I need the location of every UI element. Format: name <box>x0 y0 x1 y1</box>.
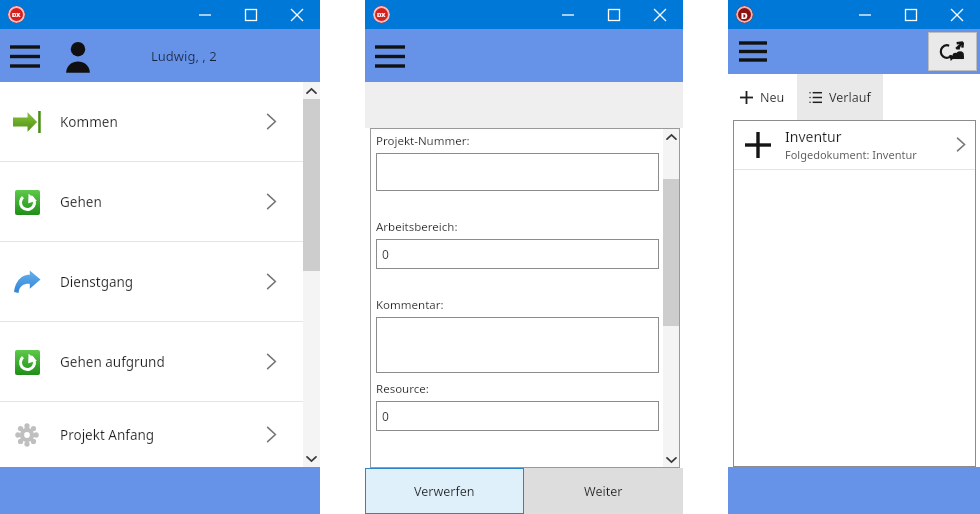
button[interactable]: Scroll down <box>303 450 320 467</box>
staticText: Projekt Anfang <box>60 426 155 444</box>
staticText: DX <box>377 11 386 19</box>
button[interactable]: Dienstgang <box>0 242 303 321</box>
button[interactable]: Gehen aufgrund <box>0 322 303 401</box>
button[interactable]: Scroll up <box>303 82 320 99</box>
staticText: Kommentar: <box>376 297 444 313</box>
button[interactable]: Scroll down <box>663 451 680 468</box>
staticText: Folgedokument: Inventur <box>785 147 917 162</box>
button[interactable]: Kommen <box>0 82 303 161</box>
staticText: Inventur <box>785 127 842 146</box>
button[interactable]: Sync <box>928 32 977 71</box>
button[interactable]: Maximize <box>228 0 274 29</box>
staticText: 0 <box>382 246 389 262</box>
button[interactable]: Menu <box>367 33 413 79</box>
staticText: Resource: <box>376 381 429 397</box>
staticText: Gehen aufgrund <box>60 353 165 371</box>
staticText: Verwerfen <box>414 483 475 500</box>
staticText: DX <box>12 11 21 19</box>
button[interactable]: Weiter <box>524 468 683 514</box>
staticText: Neu <box>760 89 785 106</box>
button[interactable]: Close <box>274 0 320 29</box>
staticText: 0 <box>382 408 389 424</box>
button[interactable]: Verwerfen <box>365 468 524 514</box>
staticText: D <box>741 9 748 21</box>
button[interactable]: 0 <box>376 239 659 269</box>
button[interactable]: Gehen <box>0 162 303 241</box>
staticText: Ludwig, , 2 <box>151 47 217 65</box>
button[interactable] <box>376 153 659 191</box>
button[interactable]: Neu <box>728 74 797 120</box>
staticText: Verlauf <box>829 89 871 106</box>
staticText: Weiter <box>584 483 623 500</box>
staticText: Projekt-Nummer: <box>376 133 470 149</box>
button[interactable]: Projekt Anfang <box>0 402 303 467</box>
button[interactable]: Minimize <box>182 0 228 29</box>
button[interactable]: Close <box>934 0 980 29</box>
staticText: Arbeitsbereich: <box>376 219 458 235</box>
button[interactable]: Inventur <box>733 120 976 169</box>
button[interactable]: Minimize <box>842 0 888 29</box>
button[interactable]: Close <box>637 0 683 29</box>
staticText: Kommen <box>60 113 118 131</box>
button[interactable]: Verlauf <box>797 74 883 120</box>
button[interactable] <box>376 317 659 373</box>
button[interactable]: Scroll up <box>663 128 680 145</box>
button[interactable]: Maximize <box>888 0 934 29</box>
staticText: Gehen <box>60 193 102 211</box>
button[interactable]: 0 <box>376 401 659 431</box>
button[interactable]: Menu <box>2 33 48 79</box>
staticText: Dienstgang <box>60 273 134 291</box>
button[interactable]: Maximize <box>591 0 637 29</box>
button[interactable]: Menu <box>730 29 776 74</box>
button[interactable]: Minimize <box>545 0 591 29</box>
